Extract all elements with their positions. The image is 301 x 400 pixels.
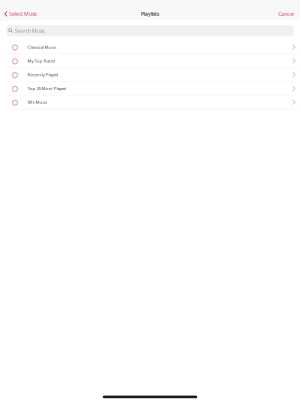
staticText: Playlists (141, 11, 159, 17)
staticText: Classical Music (27, 44, 56, 50)
button[interactable]: Classical Music (0, 40, 300, 54)
button[interactable]: Select Music (0, 7, 41, 21)
staticText: Search Music (15, 27, 45, 34)
staticText: Cancel (278, 10, 294, 17)
staticText: Top 25 Most Played (27, 85, 66, 91)
button[interactable]: My Top Rated (0, 54, 300, 68)
button[interactable]: Cancel (273, 7, 300, 21)
staticText: 90's Music (27, 99, 47, 105)
staticText: Select Music (9, 10, 37, 17)
staticText: Recently Played (27, 72, 58, 77)
button[interactable]: Recently Played (0, 68, 300, 82)
staticText: My Top Rated (27, 58, 55, 64)
button[interactable]: Top 25 Most Played (0, 82, 300, 96)
button[interactable]: 90's Music (0, 96, 300, 109)
